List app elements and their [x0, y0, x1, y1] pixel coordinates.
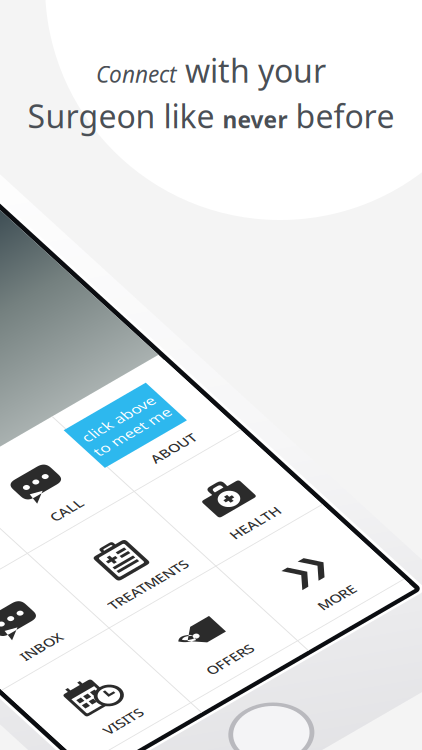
staticText: MORE	[320, 730, 361, 749]
button[interactable]: MORE	[278, 643, 403, 750]
staticText: Surgeon like never before	[27, 94, 394, 137]
staticText: INBOX	[67, 605, 113, 624]
button[interactable]: ABOUT	[278, 393, 403, 518]
button[interactable]: VISITS	[28, 643, 153, 750]
staticText: CALL	[198, 480, 233, 499]
button[interactable]: MAP	[28, 393, 153, 518]
button[interactable]: click above	[276, 406, 372, 469]
staticText: TREATMENTS	[170, 605, 260, 624]
staticText: OFFERS	[189, 730, 241, 749]
button[interactable]: TREATMENTS	[153, 518, 278, 643]
staticText: HEALTH	[312, 605, 368, 624]
button[interactable]: HEALTH	[278, 518, 403, 643]
staticText: VISITS	[69, 730, 112, 749]
button[interactable]: INBOX	[28, 518, 153, 643]
staticText: Connect with your	[96, 49, 326, 91]
staticText: ABOUT	[315, 480, 365, 499]
button[interactable]: OFFERS	[153, 643, 278, 750]
button[interactable]: CALL	[153, 393, 278, 518]
